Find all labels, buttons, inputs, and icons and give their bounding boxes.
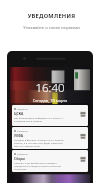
staticText: Сегодня в финале сыграют ЦСКА против Зен… xyxy=(14,138,64,147)
staticText: Вот болельщики победили со счетом 2:1 в … xyxy=(14,116,64,122)
staticText: Виджеты xyxy=(17,107,28,110)
staticText: ЦСКА xyxy=(14,111,24,115)
staticText: 16:40 xyxy=(10,80,90,96)
button[interactable]: Виджеты xyxy=(12,105,88,126)
staticText: ПРОЕКТ: Счет футбольных передач находитс… xyxy=(14,161,61,170)
button[interactable]: Виджеты xyxy=(12,150,88,172)
button[interactable]: Виджеты xyxy=(12,127,88,149)
staticText: УЕФА xyxy=(14,133,24,137)
staticText: Узнавайте о голах первыми xyxy=(0,25,103,31)
staticText: Сборы xyxy=(14,156,26,160)
staticText: Виджеты xyxy=(17,152,28,155)
staticText: УВЕДОМЛЕНИЯ xyxy=(0,12,103,20)
staticText: Сегодня, 10 марта xyxy=(10,98,90,103)
staticText: Виджеты xyxy=(17,129,28,132)
